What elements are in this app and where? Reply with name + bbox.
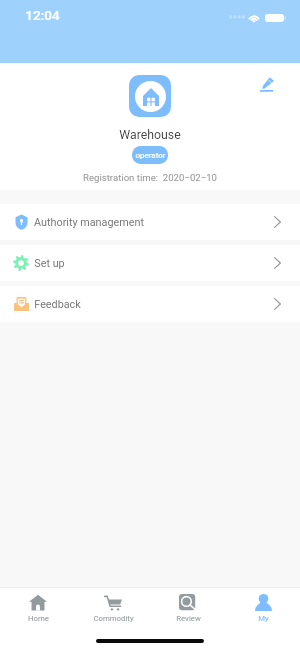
button[interactable]: Edit profile xyxy=(252,69,282,99)
staticText: Review xyxy=(176,614,201,623)
staticText: My xyxy=(258,614,269,623)
staticText: Home xyxy=(28,614,49,623)
staticText: Warehouse xyxy=(119,128,181,142)
button[interactable]: Set up xyxy=(0,245,300,281)
button[interactable]: My xyxy=(232,593,294,624)
staticText: operator xyxy=(135,151,166,160)
staticText: Registration time: 2020−02−10 xyxy=(83,172,217,183)
staticText: 12:04 xyxy=(25,7,60,23)
staticText: Feedback xyxy=(34,298,81,311)
button[interactable]: Review xyxy=(157,593,219,624)
button[interactable]: Commodity xyxy=(82,593,144,624)
staticText: Set up xyxy=(34,257,65,270)
staticText: Commodity xyxy=(93,614,134,623)
button[interactable]: Feedback xyxy=(0,286,300,322)
button[interactable]: Authority management xyxy=(0,204,300,240)
button[interactable]: Home xyxy=(7,593,69,624)
staticText: Authority management xyxy=(34,216,144,229)
